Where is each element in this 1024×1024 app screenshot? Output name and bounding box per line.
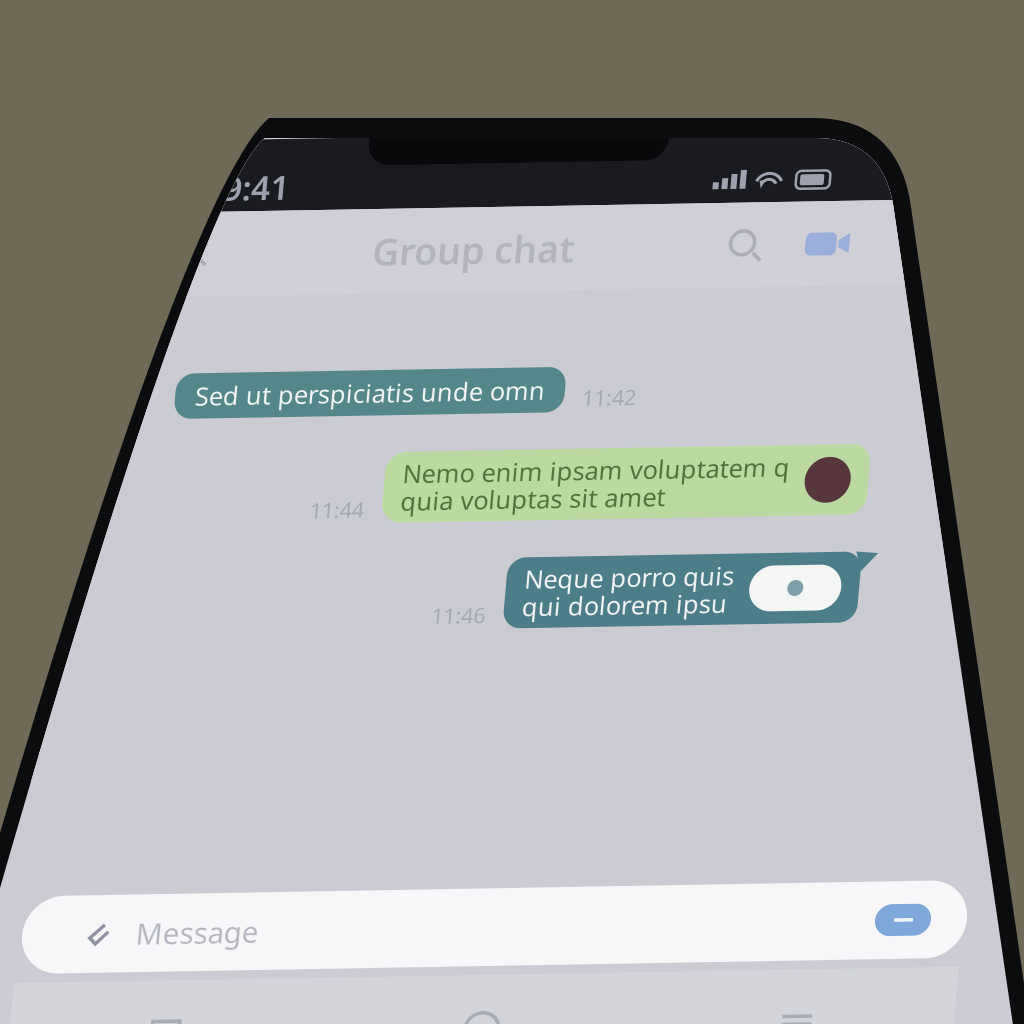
staticText: 11:44 (342, 501, 396, 530)
staticText: Group chat (382, 232, 584, 281)
button[interactable]: Attach (147, 920, 183, 956)
staticText: 11:42 (605, 393, 659, 422)
staticText: Sed ut perspiciatis unde omn (217, 385, 567, 413)
staticText: Nemo enim ipsam voluptatem q quia volupt… (432, 467, 819, 522)
staticText: Neque porro quis qui dolorem ipsu (563, 575, 773, 630)
button[interactable]: Video call (815, 236, 861, 276)
staticText: 11:46 (473, 610, 527, 638)
staticText: 9:41 (227, 168, 293, 212)
button[interactable]: Chats (87, 1022, 402, 1024)
staticText: Message (205, 918, 328, 957)
button[interactable]: Search (737, 236, 775, 276)
button[interactable]: Send (944, 919, 1000, 957)
button[interactable]: Back (193, 236, 229, 276)
